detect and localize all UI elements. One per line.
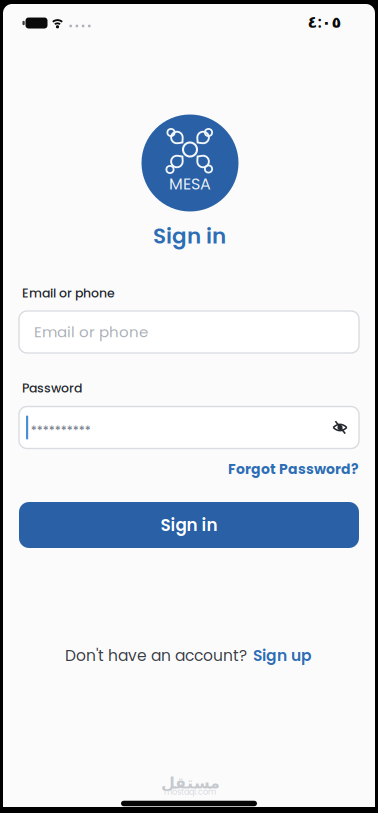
button[interactable]: Sign up xyxy=(253,645,312,666)
staticText: Sign in xyxy=(160,513,217,537)
staticText: mostaql.com xyxy=(164,786,216,798)
button[interactable]: Sign in xyxy=(19,502,359,548)
staticText: Email or phone xyxy=(34,321,148,342)
staticText: Email or phone xyxy=(22,284,115,302)
staticText: ********** xyxy=(31,421,91,439)
staticText: ٤:٠٥ xyxy=(307,11,341,32)
staticText: Password xyxy=(22,379,82,397)
staticText: Don't have an account? xyxy=(65,645,247,666)
staticText: مستقل xyxy=(160,774,219,792)
button[interactable]: Forgot Password? xyxy=(228,459,359,479)
staticText: Sign up xyxy=(253,645,312,666)
button[interactable]: ********** xyxy=(19,406,359,448)
staticText: MESA xyxy=(169,173,211,195)
staticText: Sign in xyxy=(153,221,226,251)
staticText: Forgot Password? xyxy=(228,459,359,479)
button[interactable]: Show password xyxy=(332,420,348,435)
button[interactable]: Email or phone xyxy=(19,311,359,353)
